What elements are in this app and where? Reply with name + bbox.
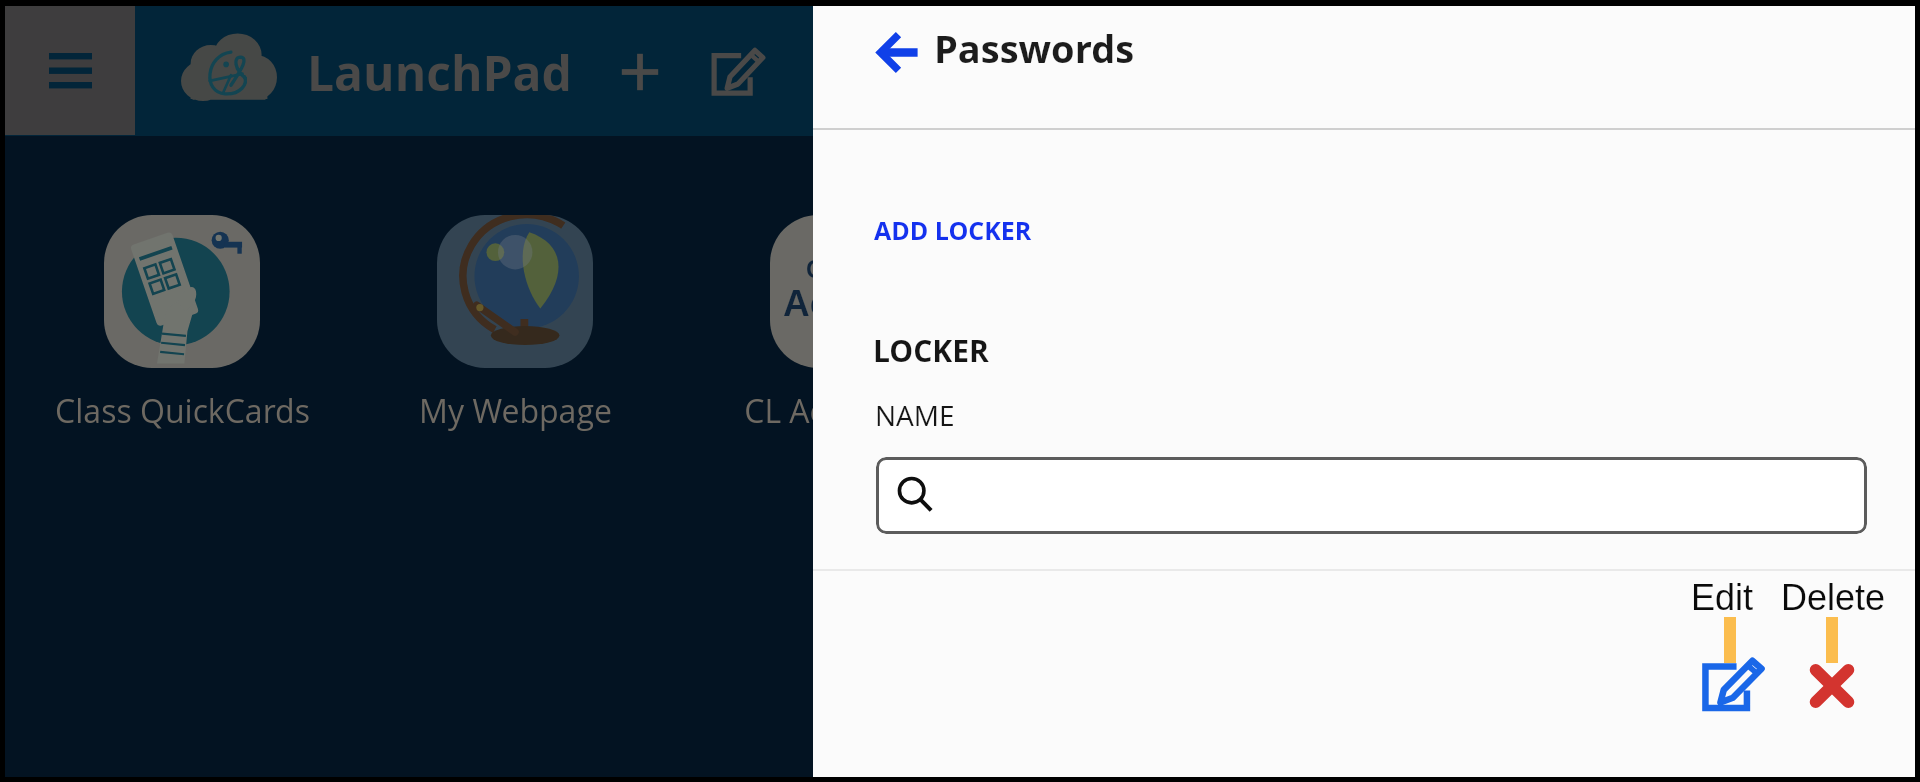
button[interactable]: Compose <box>712 47 765 95</box>
staticText: CLASS <box>806 255 891 283</box>
staticText: NAME <box>875 396 955 434</box>
staticText: LOCKER <box>873 330 989 371</box>
button[interactable]: Menu <box>5 6 135 135</box>
button[interactable]: Delete <box>1781 577 1886 617</box>
button[interactable]: Class QuickCards <box>2 215 362 433</box>
button[interactable]: Delete <box>1810 665 1854 707</box>
staticText: CL Access Site <box>744 389 952 433</box>
button[interactable]: Back <box>868 22 928 82</box>
button[interactable]: My Webpage <box>335 215 695 433</box>
button[interactable]: CLASS <box>668 215 1028 433</box>
staticText: ADD LOCKER <box>874 213 1032 247</box>
button[interactable]: Search <box>876 457 1867 534</box>
button[interactable]: Edit <box>1703 657 1764 710</box>
button[interactable]: ADD LOCKER <box>874 213 1032 247</box>
button[interactable]: Edit <box>1691 577 1754 617</box>
staticText: Passwords <box>934 22 1135 74</box>
staticText: Access <box>783 283 913 324</box>
button[interactable]: Add <box>614 46 666 98</box>
staticText: LaunchPad <box>307 40 572 105</box>
staticText: My Webpage <box>419 389 612 433</box>
staticText: Class QuickCards <box>55 389 310 433</box>
